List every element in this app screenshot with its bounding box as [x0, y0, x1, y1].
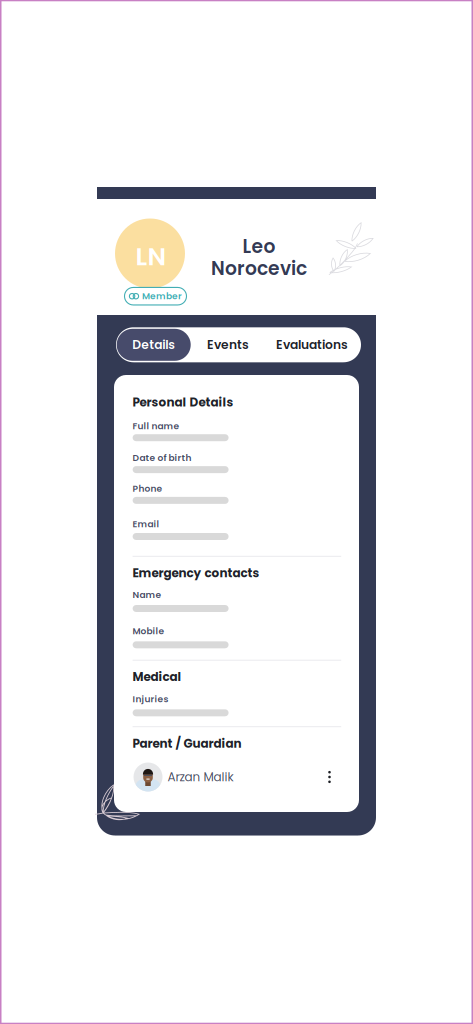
button[interactable]: Member: [124, 287, 186, 305]
staticText: Evaluations: [276, 336, 348, 353]
staticText: Full name: [133, 420, 180, 432]
staticText: Arzan Malik: [167, 769, 233, 785]
staticText: Emergency contacts: [133, 565, 260, 581]
staticText: Details: [132, 336, 175, 353]
button[interactable]: Evaluations: [267, 327, 357, 362]
staticText: Date of birth: [133, 452, 192, 464]
staticText: Medical: [133, 668, 182, 685]
staticText: Norocevic: [211, 255, 307, 281]
staticText: Phone: [133, 482, 163, 495]
staticText: Injuries: [133, 693, 169, 705]
staticText: LN: [135, 239, 166, 274]
staticText: Member: [142, 290, 182, 303]
staticText: Name: [133, 588, 162, 601]
button[interactable]: Details: [117, 329, 191, 361]
staticText: Email: [133, 518, 160, 530]
button[interactable]: Arzan Malik: [133, 762, 331, 792]
staticText: Personal Details: [133, 394, 234, 411]
staticText: Leo: [242, 233, 275, 259]
staticText: Mobile: [133, 625, 165, 637]
button[interactable]: Events: [198, 327, 258, 362]
staticText: Events: [207, 336, 249, 353]
staticText: Parent / Guardian: [133, 735, 242, 752]
